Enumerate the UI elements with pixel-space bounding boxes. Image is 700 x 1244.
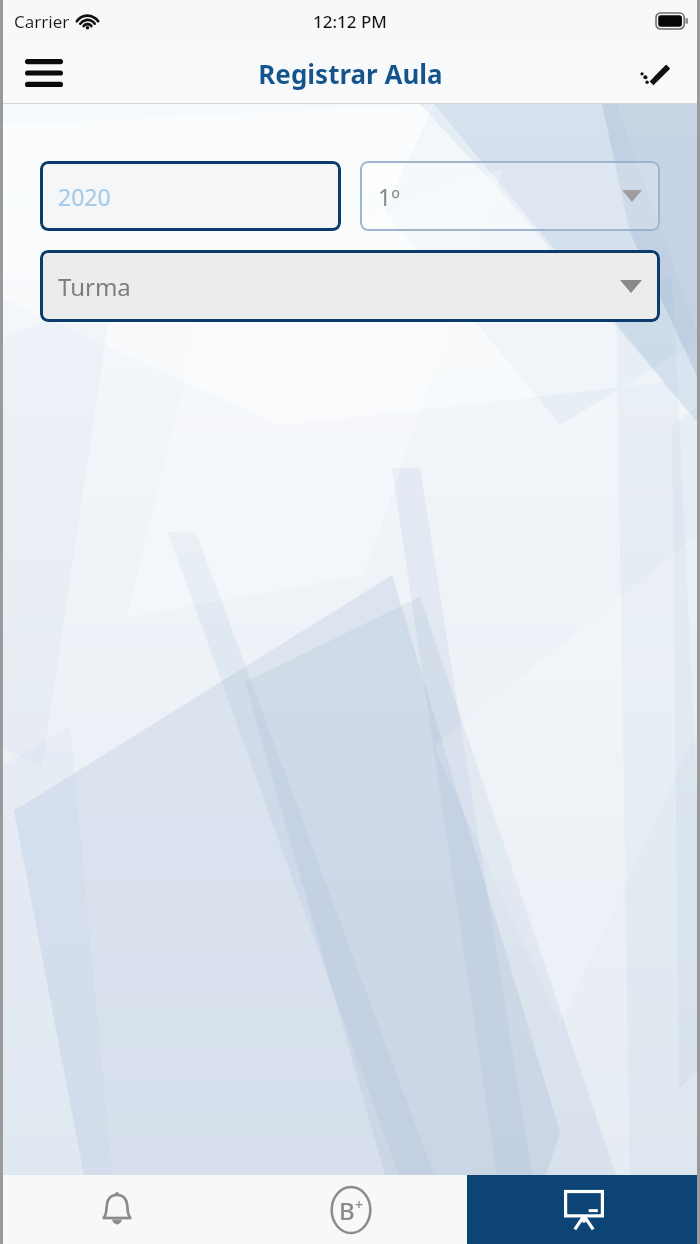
- button[interactable]: Turma: [40, 250, 660, 322]
- button[interactable]: Notifications: [0, 1175, 234, 1244]
- staticText: 2020: [58, 181, 111, 212]
- staticText: 12:12 PM: [313, 10, 387, 33]
- button[interactable]: Classes: [467, 1175, 700, 1244]
- staticText: B: [339, 1194, 355, 1227]
- staticText: +: [355, 1195, 364, 1214]
- staticText: 1º: [378, 181, 400, 212]
- staticText: Registrar Aula: [258, 56, 443, 91]
- button[interactable]: Grades: [234, 1175, 467, 1244]
- button[interactable]: 1º: [360, 161, 660, 231]
- button[interactable]: 2020: [40, 161, 341, 231]
- button[interactable]: Menu: [18, 47, 70, 99]
- staticText: Carrier: [14, 10, 70, 33]
- button[interactable]: App logo: [632, 47, 684, 99]
- staticText: Turma: [58, 270, 131, 303]
